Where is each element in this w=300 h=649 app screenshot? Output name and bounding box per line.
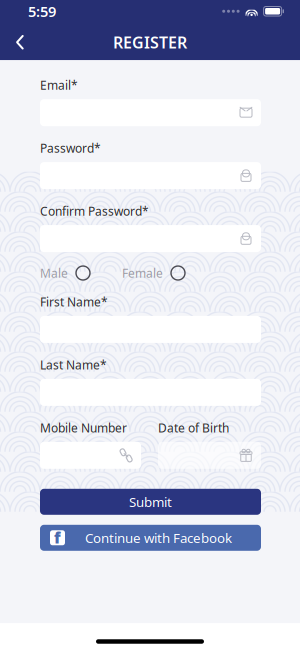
staticText: Continue with Facebook [85,529,232,547]
button[interactable]: Submit [40,489,261,515]
staticText: Last Name* [40,357,107,373]
staticText: Mobile Number [40,420,127,436]
button[interactable]: Female [122,265,185,281]
staticText: Female [122,265,163,281]
staticText: Confirm Password* [40,203,149,219]
staticText: 5:59 [28,1,56,21]
staticText: Email* [40,77,78,93]
staticText: First Name* [40,294,108,310]
staticText: Date of Birth [158,420,229,436]
staticText: REGISTER [113,32,187,53]
button[interactable]: Male [40,265,90,281]
staticText: Submit [129,493,172,511]
staticText: f [54,527,61,548]
button[interactable]: Back [0,26,40,58]
button[interactable]: f [40,525,261,551]
staticText: Male [40,265,68,281]
staticText: Password* [40,140,101,156]
